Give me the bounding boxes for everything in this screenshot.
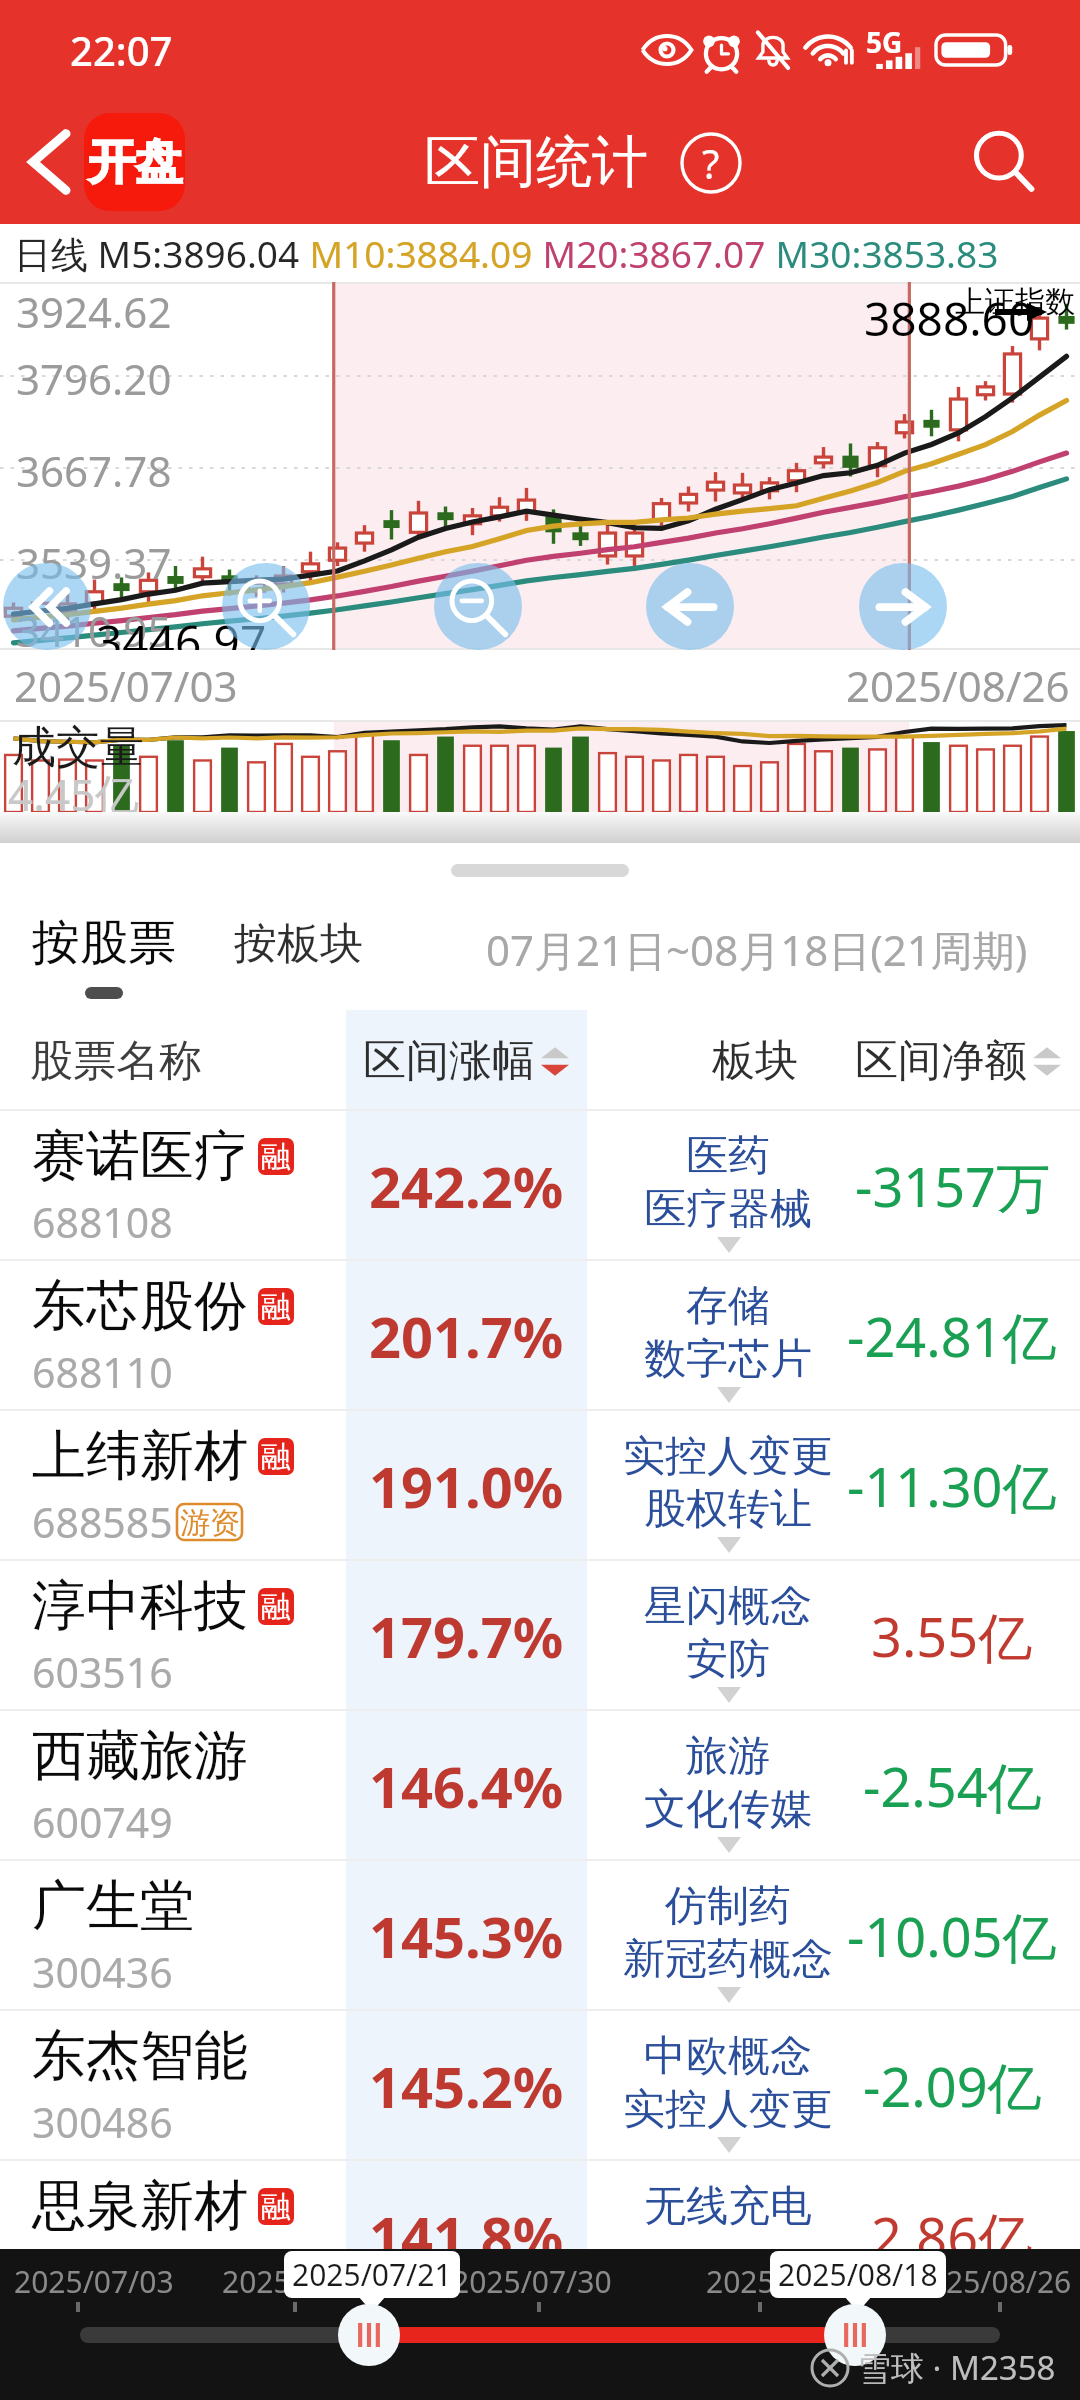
staticText: 2.86亿 bbox=[871, 2199, 1033, 2273]
staticText: 日线 M5:3896.04 bbox=[14, 228, 300, 279]
staticText: 安防 bbox=[686, 1633, 770, 1686]
staticText: 赛诺医疗 bbox=[32, 1122, 248, 1190]
staticText: 3539.37 bbox=[16, 534, 172, 591]
staticText: 145.2% bbox=[369, 2048, 564, 2124]
staticText: 600749 bbox=[32, 1794, 173, 1850]
staticText: 股权转让 bbox=[644, 1483, 812, 1536]
staticText: -11.30亿 bbox=[847, 1449, 1057, 1523]
staticText: 3.55亿 bbox=[871, 1599, 1033, 1673]
staticText: 3924.62 bbox=[16, 283, 172, 340]
staticText: 仿制药 bbox=[665, 1880, 791, 1933]
button[interactable]: Search bbox=[964, 122, 1044, 202]
staticText: 旅游 bbox=[686, 1730, 770, 1783]
staticText: 300486 bbox=[32, 2094, 173, 2150]
staticText: 上证指数 bbox=[955, 283, 1075, 321]
button[interactable]: 上纬新材 bbox=[0, 1411, 1080, 1561]
staticText: -24.81亿 bbox=[847, 1299, 1057, 1373]
staticText: 医药 bbox=[686, 1130, 770, 1183]
button[interactable]: Pan right bbox=[859, 563, 947, 650]
button[interactable]: 按股票 bbox=[32, 913, 176, 999]
staticText: 07月21日~08月18日(21周期) bbox=[486, 921, 1028, 978]
staticText: 文化传媒 bbox=[644, 1783, 812, 1836]
staticText: -3157万 bbox=[855, 1149, 1050, 1223]
staticText: 中欧概念 bbox=[644, 2030, 812, 2083]
staticText: 融 bbox=[261, 2188, 291, 2225]
staticText: 成交量 bbox=[12, 720, 144, 775]
staticText: 145.3% bbox=[369, 1898, 564, 1974]
staticText: 2025/07/03 bbox=[14, 657, 238, 714]
staticText: 2025/07/03 bbox=[14, 2261, 174, 2302]
staticText: 688585 bbox=[32, 1494, 173, 1550]
button[interactable]: 淳中科技 bbox=[0, 1561, 1080, 1711]
staticText: 201.7% bbox=[369, 1298, 564, 1374]
staticText: 股票名称 bbox=[30, 1034, 202, 1088]
button[interactable]: 东杰智能 bbox=[0, 2011, 1080, 2161]
button[interactable]: Pan left bbox=[646, 563, 734, 650]
staticText: 2025/08/18 bbox=[778, 2254, 938, 2295]
staticText: 2025/08/26 bbox=[846, 657, 1070, 714]
button[interactable]: Zoom out bbox=[434, 563, 522, 650]
button[interactable]: 西藏旅游 bbox=[0, 1711, 1080, 1861]
staticText: 雪球 · M2358 bbox=[858, 2345, 1056, 2390]
staticText: 融 bbox=[261, 1288, 291, 1325]
button[interactable]: Zoom in bbox=[222, 563, 310, 650]
staticText: 3410.95 bbox=[16, 602, 172, 650]
staticText: 3888.60 bbox=[864, 287, 1035, 350]
button[interactable]: 广生堂 bbox=[0, 1861, 1080, 2011]
staticText: 区间涨幅 bbox=[363, 1034, 535, 1088]
staticText: 实控人变更 bbox=[623, 2083, 833, 2136]
staticText: 2025/07/21 bbox=[292, 2254, 452, 2295]
staticText: 2025 bbox=[222, 2261, 291, 2302]
staticText: 按股票 bbox=[32, 913, 176, 973]
staticText: 2025/07/30 bbox=[452, 2261, 612, 2302]
staticText: M10:3884.09 bbox=[300, 228, 533, 278]
staticText: -2.54亿 bbox=[863, 1749, 1042, 1823]
staticText: 融 bbox=[261, 1438, 291, 1475]
staticText: 141.8% bbox=[369, 2198, 564, 2274]
button[interactable]: 赛诺医疗 bbox=[0, 1111, 1080, 1261]
staticText: 5G bbox=[866, 23, 903, 60]
staticText: 区间净额 bbox=[855, 1034, 1027, 1088]
staticText: 301489 bbox=[32, 2244, 173, 2300]
staticText: 淳中科技 bbox=[32, 1572, 248, 1640]
staticText: 179.7% bbox=[369, 1598, 564, 1674]
staticText: 数字芯片 bbox=[644, 1333, 812, 1386]
staticText: ? bbox=[702, 136, 720, 190]
staticText: 2025 bbox=[706, 2261, 775, 2302]
staticText: 22:07 bbox=[70, 23, 173, 77]
staticText: 25/08/26 bbox=[946, 2261, 1072, 2302]
staticText: 思泉新材 bbox=[32, 2172, 248, 2240]
staticText: -10.05亿 bbox=[847, 1899, 1057, 1973]
staticText: 医疗器械 bbox=[644, 1183, 812, 1236]
staticText: 区间统计 bbox=[424, 127, 648, 198]
button[interactable]: Range handle bbox=[338, 2304, 400, 2366]
staticText: 广生堂 bbox=[32, 1872, 194, 1940]
staticText: 603516 bbox=[32, 1644, 173, 1700]
button[interactable]: Back bbox=[24, 113, 185, 211]
button[interactable]: 东芯股份 bbox=[0, 1261, 1080, 1411]
button[interactable]: 按板块 bbox=[234, 917, 363, 971]
button[interactable]: 思泉新材 bbox=[0, 2161, 1080, 2311]
button[interactable]: Range handle bbox=[824, 2304, 886, 2366]
staticText: 146.4% bbox=[369, 1748, 564, 1824]
staticText: 3667.78 bbox=[16, 442, 172, 499]
staticText: 融 bbox=[261, 1138, 291, 1175]
staticText: 无线充电 bbox=[644, 2180, 812, 2233]
staticText: 3796.20 bbox=[16, 350, 172, 407]
staticText: 242.2% bbox=[369, 1148, 564, 1224]
staticText: M20:3867.07 bbox=[533, 228, 766, 278]
staticText: 东杰智能 bbox=[32, 2022, 248, 2090]
staticText: 东芯股份 bbox=[32, 1272, 248, 1340]
staticText: 3446.97 bbox=[96, 610, 267, 650]
staticText: 开盘 bbox=[88, 133, 182, 192]
staticText: -2.09亿 bbox=[863, 2049, 1042, 2123]
staticText: 星闪概念 bbox=[644, 1580, 812, 1633]
staticText: 西藏旅游 bbox=[32, 1722, 248, 1790]
staticText: 存储 bbox=[686, 1280, 770, 1333]
button[interactable]: Help bbox=[680, 132, 742, 194]
button[interactable]: Previous bbox=[3, 563, 91, 650]
staticText: 191.0% bbox=[369, 1448, 564, 1524]
staticText: 实控人变更 bbox=[623, 1430, 833, 1483]
staticText: 688108 bbox=[32, 1194, 173, 1250]
staticText: M30:3853.83 bbox=[766, 228, 999, 278]
